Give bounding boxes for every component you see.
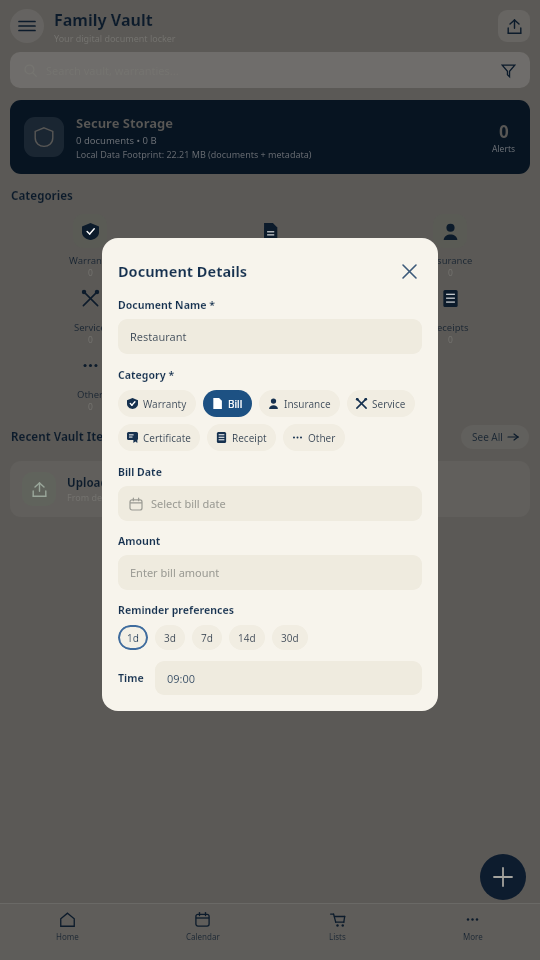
button[interactable]: Lists [270,904,405,950]
button[interactable]: Service [347,390,415,417]
staticText: Family Vault [54,9,153,31]
button[interactable]: Restaurant [118,319,422,354]
staticText: Calendar [186,931,220,942]
staticText: Select bill date [151,496,226,511]
button[interactable]: Warranty [118,390,196,417]
staticText: Amount [118,534,161,548]
staticText: Categories [11,188,73,204]
staticText: Alerts [492,143,516,155]
button[interactable]: Enter bill amount [118,555,422,590]
button[interactable]: Other [283,424,345,451]
button[interactable]: Add [480,854,526,900]
button[interactable]: 09:00 [155,661,422,695]
button[interactable]: More [405,904,540,950]
staticText: 1d [127,631,139,645]
staticText: Bill [228,397,243,411]
staticText: Secure Storage [76,114,174,132]
staticText: 0 [88,267,93,279]
staticText: Recent Vault Items [11,429,120,445]
button[interactable] [180,348,360,415]
button[interactable]: 30d [272,625,308,650]
button[interactable]: Home [0,904,135,950]
button[interactable]: See All [461,425,529,449]
staticText: Receipt [232,431,267,445]
staticText: 0 [499,120,509,143]
staticText: 30d [281,631,299,645]
staticText: Service [74,321,106,334]
staticText: Lists [329,931,346,942]
staticText: Warranty [69,254,111,267]
staticText: 0 [88,401,93,413]
staticText: Receipts [431,321,469,334]
staticText: 3d [164,631,176,645]
staticText: Service [372,397,406,411]
staticText: Certificate [143,431,191,445]
staticText: Category * [118,368,175,382]
button[interactable]: Other [0,348,180,415]
button[interactable]: Certificate [118,424,200,451]
button[interactable]: 3d [155,625,185,650]
staticText: Warranty [143,397,187,411]
button[interactable]: Menu [10,9,44,43]
button[interactable] [360,348,540,415]
staticText: 09:00 [167,671,196,686]
staticText: Upload [67,475,108,491]
staticText: 7d [201,631,213,645]
button[interactable]: 14d [229,625,265,650]
button[interactable]: Documents [180,281,360,348]
staticText: 0 documents • 0 B [76,134,157,147]
button[interactable]: Insurance [360,214,540,281]
staticText: Enter bill amount [130,565,220,580]
staticText: Your digital document locker [54,32,176,44]
staticText: Document Name * [118,298,215,312]
button[interactable]: Share [498,10,530,42]
button[interactable]: Select bill date [118,486,422,521]
staticText: See All [472,430,503,444]
staticText: Home [56,931,79,942]
staticText: Restaurant [130,329,187,344]
button[interactable]: Secure Storage [10,100,530,174]
button[interactable]: Calendar [135,904,270,950]
button[interactable]: Warranty [0,214,180,281]
staticText: Insurance [284,397,331,411]
staticText: Time [118,671,144,685]
button[interactable]: 7d [192,625,222,650]
staticText: 0 [448,334,453,346]
staticText: 0 [88,334,93,346]
button[interactable]: 1d [118,625,148,650]
staticText: Other [77,388,104,401]
button[interactable]: Receipt [207,424,276,451]
button[interactable]: Receipts [360,281,540,348]
staticText: Reminder preferences [118,603,234,617]
staticText: Other [308,431,336,445]
staticText: From device [67,491,119,503]
staticText: Local Data Footprint: 22.21 MB (document… [76,148,312,160]
button[interactable]: Upload [10,461,530,517]
staticText: 14d [238,631,256,645]
staticText: Document Details [118,261,248,281]
staticText: 0 [448,267,453,279]
button[interactable]: Close [396,258,422,284]
staticText: Insurance [428,254,473,267]
button[interactable]: Service [0,281,180,348]
button[interactable]: Insurance [259,390,340,417]
staticText: Bill Date [118,465,162,479]
button[interactable]: Bills [180,214,360,281]
button[interactable]: Bill [203,390,252,417]
button[interactable]: Search vault, warranties... [10,52,530,88]
staticText: More [463,931,483,942]
